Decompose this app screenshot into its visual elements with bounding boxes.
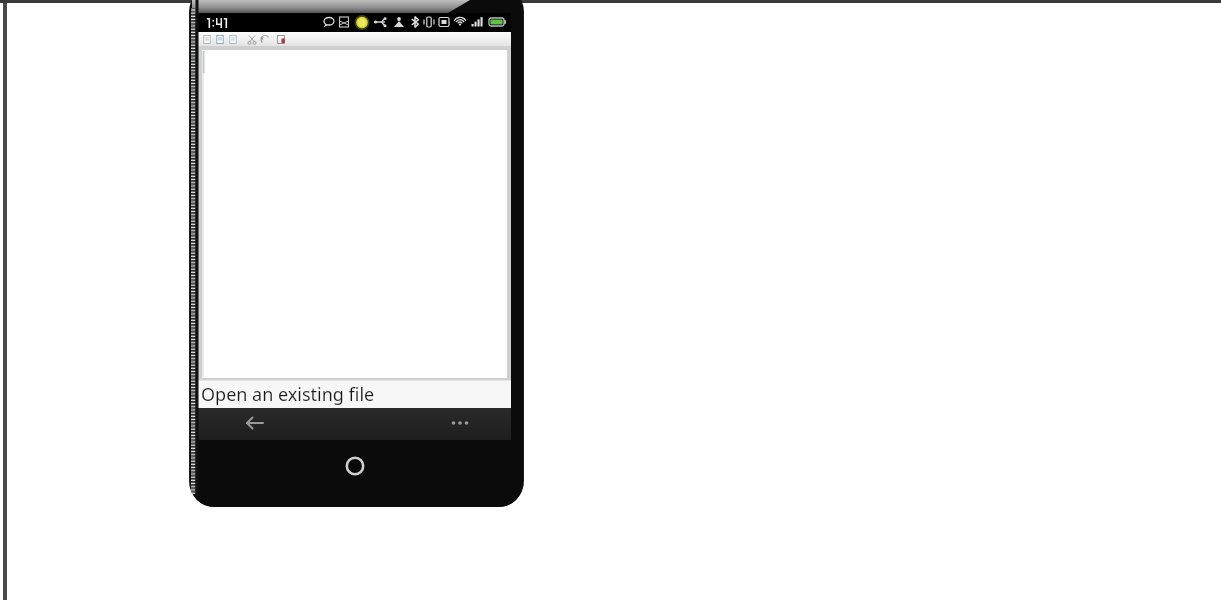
button[interactable]: Undo bbox=[260, 33, 272, 46]
button[interactable]: New bbox=[202, 33, 214, 46]
button[interactable]: Back bbox=[228, 408, 284, 440]
button[interactable]: Open an existing file bbox=[201, 382, 501, 406]
button[interactable]: Open bbox=[215, 33, 227, 46]
button[interactable]: More options bbox=[434, 408, 490, 440]
button[interactable]: Cut bbox=[247, 33, 259, 46]
button[interactable]: Home bbox=[339, 450, 371, 482]
button[interactable]: Properties bbox=[276, 33, 288, 46]
button[interactable]: Save bbox=[228, 33, 240, 46]
